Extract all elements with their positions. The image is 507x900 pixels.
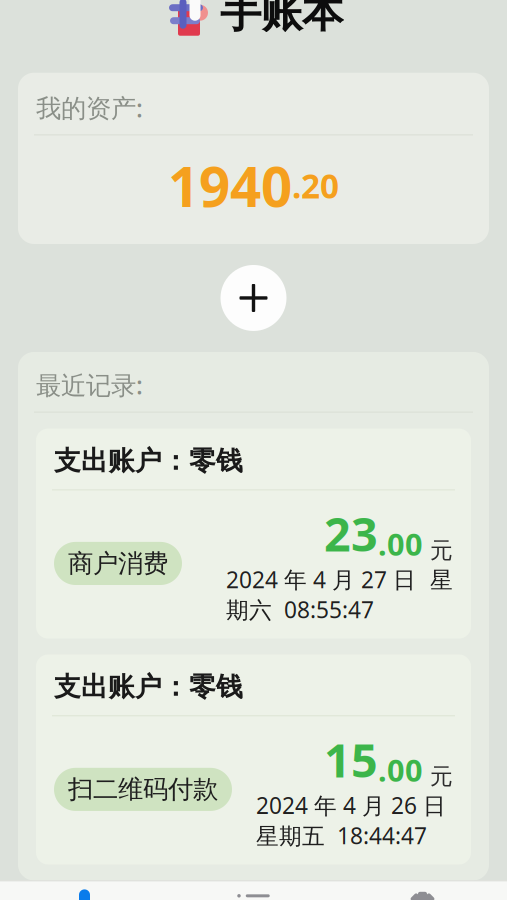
- staticText: 元: [423, 762, 453, 790]
- button[interactable]: 账单: [169, 883, 338, 900]
- staticText: 扫二维码付款: [68, 774, 218, 805]
- button[interactable]: 支出账户：: [36, 429, 471, 638]
- staticText: 支出账户：: [54, 670, 189, 703]
- button[interactable]: 支出账户：: [36, 654, 471, 864]
- staticText: 元: [423, 536, 453, 564]
- staticText: 15: [324, 728, 378, 790]
- staticText: .20: [292, 163, 339, 208]
- staticText: 支出账户：: [54, 445, 189, 477]
- button[interactable]: 添加记录: [217, 262, 289, 334]
- button[interactable]: 设置: [338, 882, 507, 900]
- button[interactable]: New: [0, 881, 169, 900]
- staticText: .00: [378, 524, 423, 564]
- staticText: 商户消费: [68, 548, 168, 579]
- staticText: 2024 年 4 月 26 日 星期五 18:44:47: [256, 790, 453, 850]
- staticText: .00: [378, 749, 423, 790]
- staticText: 2024 年 4 月 27 日 星期六 08:55:47: [226, 564, 453, 624]
- staticText: 最近记录:: [36, 368, 143, 402]
- staticText: 我的资产:: [36, 91, 143, 124]
- staticText: 1940: [168, 149, 292, 222]
- staticText: 23: [324, 502, 378, 564]
- staticText: 零钱: [189, 670, 243, 703]
- staticText: 零钱: [189, 445, 243, 477]
- staticText: 手账本: [220, 0, 343, 38]
